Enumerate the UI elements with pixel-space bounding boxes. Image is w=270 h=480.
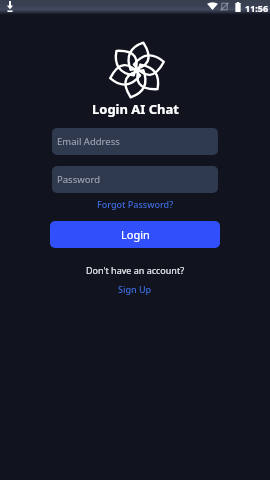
button[interactable]: Login: [50, 221, 220, 248]
button[interactable]: Sign Up: [114, 281, 156, 297]
staticText: Login AI Chat: [92, 100, 179, 118]
staticText: 11:56: [245, 2, 269, 14]
button[interactable]: Email Address: [52, 128, 218, 155]
staticText: Password: [57, 173, 100, 186]
other: Downloading: [6, 1, 14, 12]
button[interactable]: Password: [52, 166, 218, 193]
staticText: Don't have an account?: [86, 264, 185, 276]
staticText: Forgot Password?: [97, 198, 174, 210]
button[interactable]: Forgot Password?: [93, 196, 178, 212]
staticText: Login: [121, 227, 150, 242]
staticText: Email Address: [57, 135, 120, 148]
staticText: Sign Up: [118, 283, 152, 295]
